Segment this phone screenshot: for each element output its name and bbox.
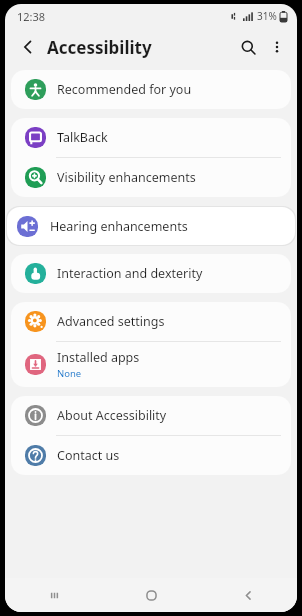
staticText: Interaction and dexterity xyxy=(57,265,203,282)
button[interactable]: Search xyxy=(233,32,263,62)
staticText: Hearing enhancements xyxy=(50,218,188,235)
button[interactable]: TalkBack xyxy=(11,118,291,157)
staticText: About Accessibility xyxy=(57,407,167,424)
staticText: Recommended for you xyxy=(57,81,192,98)
staticText: Accessibility xyxy=(47,36,152,59)
staticText: Contact us xyxy=(57,447,120,464)
button[interactable]: Interaction and dexterity xyxy=(11,254,291,293)
button[interactable]: Hearing enhancements xyxy=(7,207,295,245)
staticText: Advanced settings xyxy=(57,313,165,330)
button[interactable]: Back xyxy=(13,32,43,62)
staticText: TalkBack xyxy=(57,129,108,146)
button[interactable]: Home xyxy=(103,578,200,612)
staticText: Installed apps xyxy=(57,349,140,366)
button[interactable]: More options xyxy=(263,33,291,61)
staticText: Visibility enhancements xyxy=(57,169,196,186)
staticText: 31% xyxy=(257,9,277,23)
button[interactable]: Recommended for you xyxy=(11,70,291,109)
button[interactable]: Contact us xyxy=(11,436,291,475)
button[interactable]: About Accessibility xyxy=(11,396,291,435)
staticText: 12:38 xyxy=(17,9,46,24)
button[interactable]: Back xyxy=(200,578,297,612)
button[interactable]: Recent apps xyxy=(5,578,103,612)
button[interactable]: Advanced settings xyxy=(11,302,291,341)
button[interactable]: Installed apps xyxy=(11,342,291,387)
staticText: None xyxy=(57,367,82,380)
button[interactable]: Visibility enhancements xyxy=(11,158,291,197)
